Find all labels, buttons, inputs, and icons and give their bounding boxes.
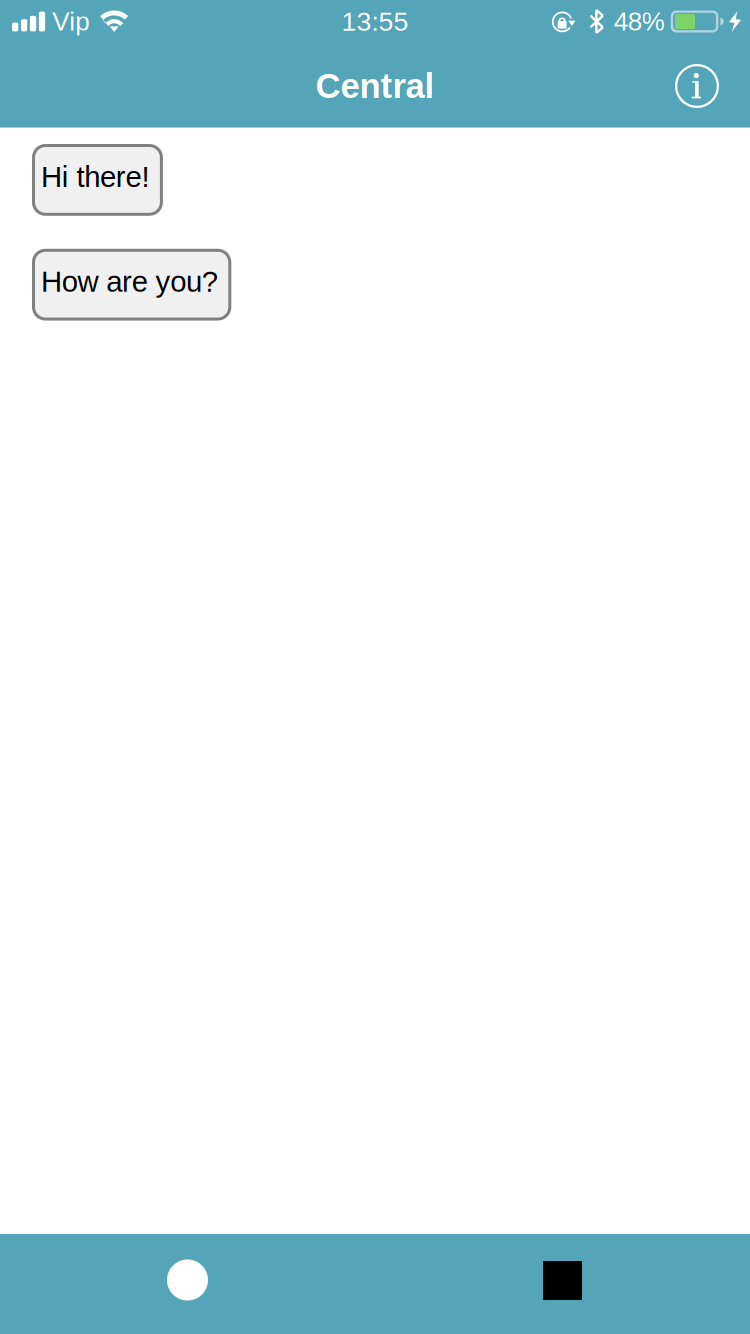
staticText: Central [315, 67, 434, 105]
button[interactable]: How are you? [32, 249, 231, 321]
button[interactable]: Hi there! [32, 144, 163, 216]
staticText: How are you? [41, 265, 218, 298]
staticText: 48% [614, 7, 665, 36]
staticText: 13:55 [341, 7, 408, 36]
button[interactable]: Info [660, 50, 730, 118]
button[interactable]: Start scanning [147, 1238, 228, 1329]
staticText: Hi there! [41, 160, 149, 193]
button[interactable]: Stop scanning [523, 1238, 602, 1330]
staticText: Vip [52, 7, 89, 36]
